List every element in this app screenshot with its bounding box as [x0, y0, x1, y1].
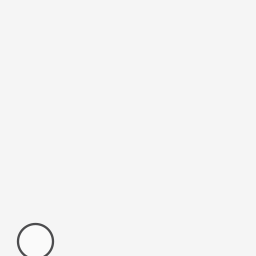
button[interactable]: Record: [18, 224, 53, 256]
